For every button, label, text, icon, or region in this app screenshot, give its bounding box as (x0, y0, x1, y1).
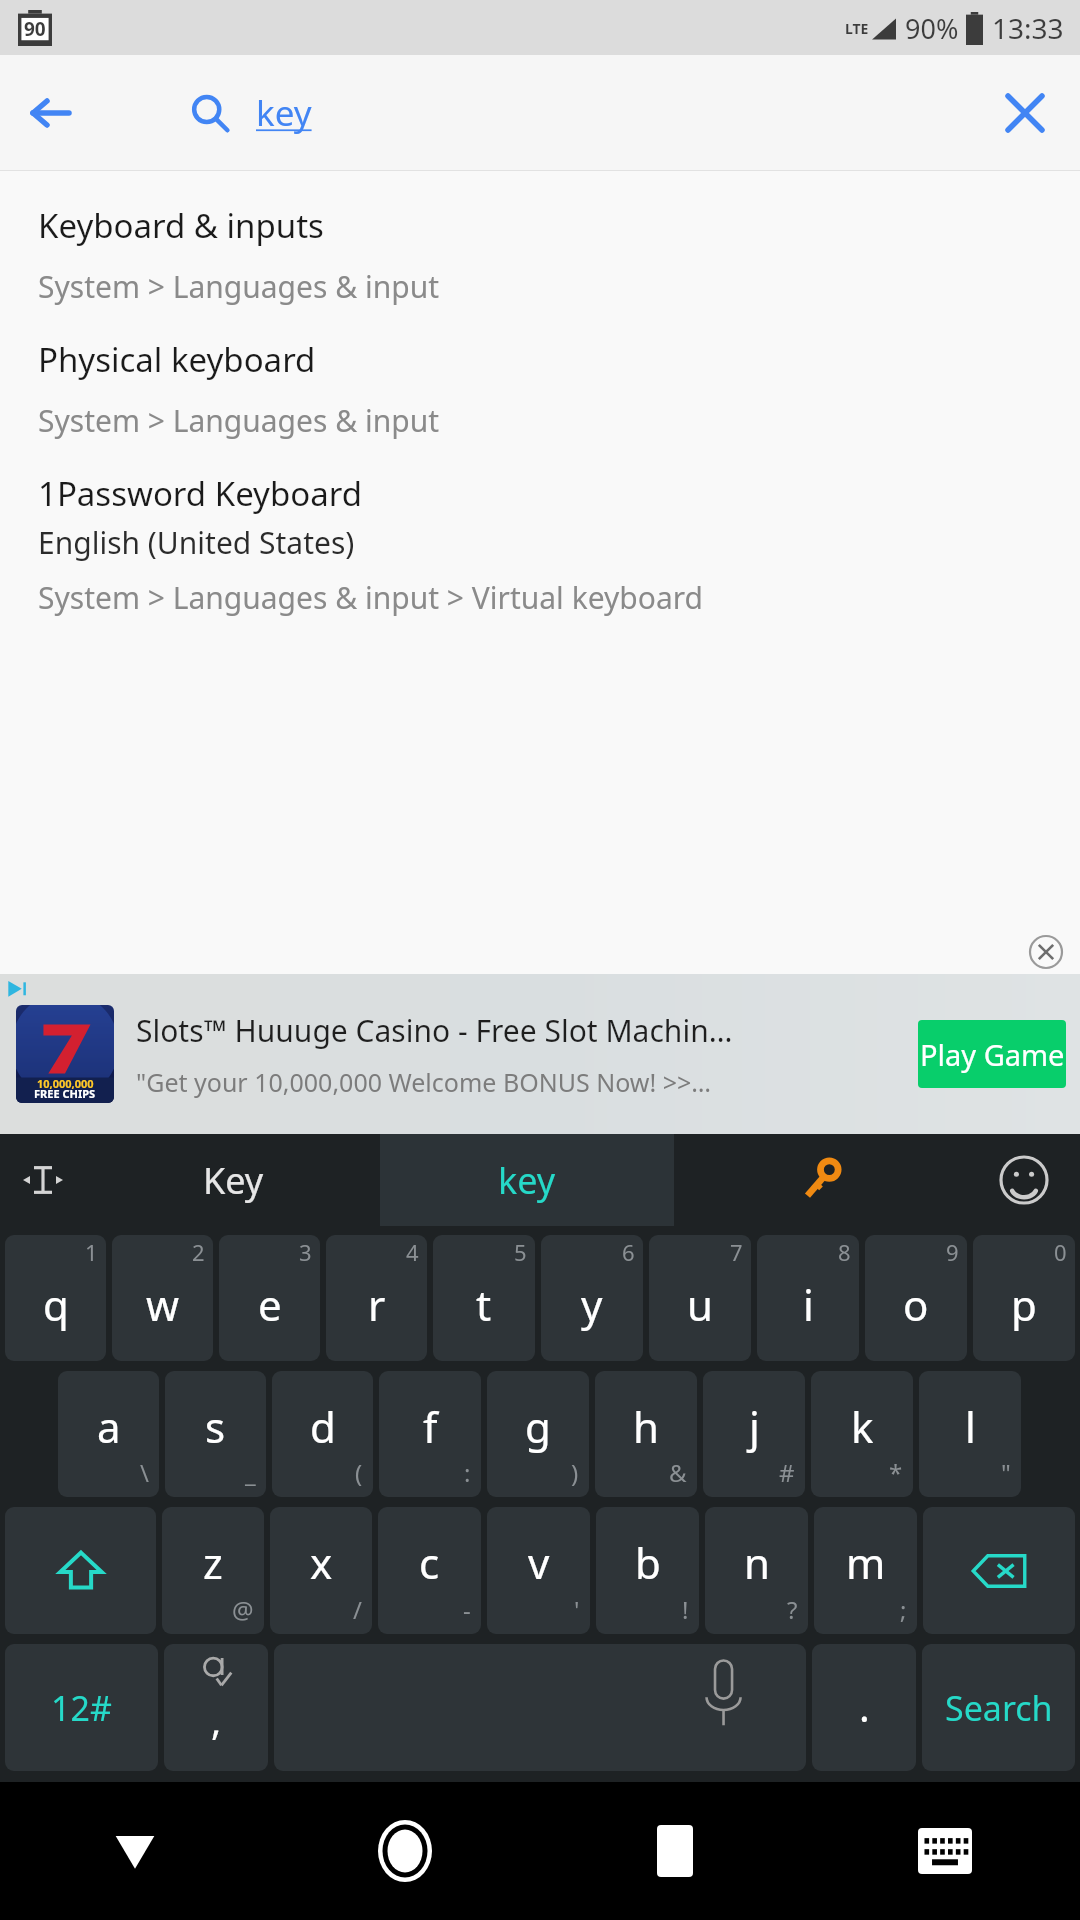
button[interactable]: b (596, 1507, 699, 1634)
staticText: 9 (946, 1237, 959, 1267)
staticText: e (258, 1276, 282, 1333)
button[interactable]: l (919, 1371, 1021, 1497)
button[interactable]: 6 (541, 1235, 643, 1361)
staticText: 5 (514, 1237, 527, 1267)
button[interactable]: Physical keyboard (0, 337, 1080, 441)
staticText: l (965, 1398, 976, 1455)
staticText: r (368, 1276, 386, 1333)
staticText: y (581, 1276, 603, 1333)
button[interactable]: 1 (5, 1235, 106, 1361)
staticText: English (United States) (38, 522, 355, 563)
button[interactable]: 9 (865, 1235, 967, 1361)
staticText: 10,000,000 (37, 1076, 94, 1091)
button[interactable]: 3 (219, 1235, 320, 1361)
button[interactable]: Backspace (923, 1507, 1075, 1634)
staticText: LTE (845, 19, 869, 38)
staticText: Keyboard & inputs (38, 203, 324, 248)
staticText: key (498, 1156, 556, 1205)
button[interactable]: z (162, 1507, 264, 1634)
staticText: System > Languages & input (38, 266, 440, 307)
button[interactable]: Password (674, 1134, 968, 1226)
staticText: ? (787, 1593, 798, 1626)
button[interactable]: Hide keyboard (0, 1782, 270, 1920)
button[interactable]: 12# (5, 1644, 158, 1771)
button[interactable]: 4 (326, 1235, 427, 1361)
staticText: d (310, 1398, 336, 1455)
staticText: Play Game (920, 1035, 1065, 1074)
staticText: 90 (24, 16, 46, 42)
button[interactable]: a (58, 1371, 159, 1497)
staticText: Slots™ Huuuge Casino - Free Slot Machin… (136, 1010, 733, 1051)
button[interactable]: s (165, 1371, 266, 1497)
button[interactable]: key (380, 1134, 674, 1226)
staticText: / (353, 1593, 362, 1626)
staticText: & (669, 1456, 687, 1489)
button[interactable]: Switch keyboard (810, 1782, 1080, 1920)
button[interactable]: m (814, 1507, 917, 1634)
staticText: System > Languages & input (38, 400, 440, 441)
staticText: ( (355, 1456, 363, 1489)
button[interactable]: 5 (433, 1235, 535, 1361)
button[interactable]: Comma, language switch (164, 1644, 268, 1771)
button[interactable]: Close ad (1026, 932, 1066, 972)
staticText: * (889, 1456, 903, 1489)
button[interactable]: Period (812, 1644, 916, 1771)
staticText: Physical keyboard (38, 337, 316, 382)
staticText: o (903, 1276, 929, 1333)
button[interactable]: Cursor control (0, 1134, 86, 1226)
staticText: . (859, 1679, 870, 1733)
button[interactable]: Clear search (988, 76, 1062, 150)
staticText: b (635, 1534, 661, 1591)
staticText: Search (945, 1685, 1053, 1731)
staticText: h (633, 1398, 659, 1455)
staticText: "Get your 10,000,000 Welcome BONUS Now! … (136, 1065, 712, 1099)
button[interactable]: f (379, 1371, 481, 1497)
button[interactable]: x (270, 1507, 372, 1634)
staticText: x (310, 1534, 333, 1591)
button[interactable]: 8 (757, 1235, 859, 1361)
staticText: m (846, 1534, 886, 1591)
button[interactable]: 2 (112, 1235, 213, 1361)
staticText: " (1001, 1456, 1011, 1489)
button[interactable]: Search (922, 1644, 1075, 1771)
staticText: key (256, 89, 312, 137)
staticText: s (205, 1398, 226, 1455)
staticText: 7 (730, 1237, 743, 1267)
staticText: c (419, 1534, 440, 1591)
button[interactable]: Back (14, 76, 88, 150)
staticText: # (779, 1456, 795, 1489)
button[interactable]: v (487, 1507, 590, 1634)
button[interactable]: Home (270, 1782, 540, 1920)
button[interactable]: j (703, 1371, 805, 1497)
button[interactable]: 7 (649, 1235, 751, 1361)
button[interactable]: 10,000,000 (0, 974, 1080, 1134)
staticText: 1Password Keyboard (38, 471, 362, 516)
staticText: n (744, 1534, 770, 1591)
staticText: u (687, 1276, 713, 1333)
staticText: 13:33 (992, 9, 1064, 47)
button[interactable]: c (378, 1507, 481, 1634)
staticText: - (463, 1593, 471, 1626)
staticText: Key (203, 1156, 264, 1205)
button[interactable]: Key (86, 1134, 380, 1226)
button[interactable]: n (705, 1507, 808, 1634)
staticText: 6 (622, 1237, 635, 1267)
button[interactable]: g (487, 1371, 589, 1497)
button[interactable]: Recent apps (540, 1782, 810, 1920)
staticText: p (1011, 1276, 1037, 1333)
button[interactable]: 1Password Keyboard (0, 471, 1080, 618)
button[interactable]: 0 (973, 1235, 1075, 1361)
button[interactable]: h (595, 1371, 697, 1497)
staticText: \ (140, 1456, 149, 1489)
button[interactable]: Keyboard & inputs (0, 203, 1080, 307)
button[interactable]: Space (274, 1644, 806, 1771)
staticText: : (464, 1456, 471, 1489)
button[interactable]: d (272, 1371, 373, 1497)
staticText: , (211, 1694, 222, 1746)
button[interactable]: Play Game (918, 1020, 1066, 1088)
staticText: 12# (51, 1685, 112, 1731)
button[interactable]: Emoji (968, 1134, 1080, 1226)
staticText: 90% (905, 10, 959, 47)
button[interactable]: Shift (5, 1507, 156, 1634)
button[interactable]: k (811, 1371, 913, 1497)
